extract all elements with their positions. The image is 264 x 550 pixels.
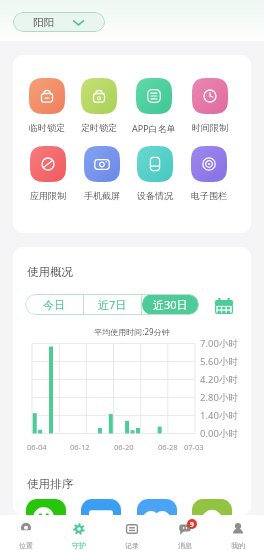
staticText: 9 (190, 520, 194, 529)
staticText: 2.80小时 (200, 391, 238, 404)
staticText: 平均使用时间:29分钟 (13, 326, 251, 337)
staticText: 定时锁定 (81, 122, 117, 133)
button[interactable]: 近30日 (142, 294, 199, 315)
button[interactable]: 电子围栏 (191, 146, 227, 201)
button[interactable]: 记录 (105, 516, 158, 550)
staticText: 守护 (72, 541, 86, 550)
button[interactable] (26, 499, 66, 515)
staticText: 消息 (178, 541, 192, 550)
staticText: 07-03 (184, 442, 204, 452)
staticText: 记录 (125, 541, 139, 550)
staticText: 5.60小时 (200, 355, 238, 368)
staticText: 时间限制 (192, 122, 228, 133)
button[interactable] (192, 499, 232, 515)
staticText: APP白名单 (132, 122, 176, 134)
button[interactable]: 阳阳 (13, 12, 105, 32)
button[interactable]: Select date (215, 298, 233, 314)
staticText: 06-04 (27, 442, 47, 452)
button[interactable]: 守护 (52, 516, 105, 550)
button[interactable]: 手机截屏 (84, 146, 120, 201)
staticText: 近30日 (153, 297, 188, 312)
button[interactable] (81, 499, 121, 515)
staticText: 06-12 (70, 442, 90, 452)
button[interactable]: 设备情况 (137, 146, 173, 201)
staticText: 应用限制 (30, 190, 66, 201)
button[interactable]: 9 (158, 516, 211, 550)
staticText: 电子围栏 (191, 190, 227, 201)
button[interactable]: 应用限制 (30, 146, 66, 201)
button[interactable]: 位置 (0, 516, 52, 550)
staticText: 使用排序 (27, 477, 73, 491)
button[interactable] (137, 499, 177, 515)
staticText: 今日 (43, 298, 65, 312)
staticText: 4.20小时 (200, 373, 238, 386)
staticText: 0.00小时 (200, 427, 238, 440)
staticText: 06-28 (158, 442, 178, 452)
staticText: 近7日 (98, 297, 127, 312)
staticText: 使用概况 (27, 265, 73, 279)
staticText: 1.40小时 (200, 409, 238, 422)
button[interactable]: 我的 (211, 516, 264, 550)
staticText: 06-20 (114, 442, 134, 452)
button[interactable]: 定时锁定 (81, 78, 117, 133)
button[interactable]: 时间限制 (192, 78, 228, 133)
button[interactable]: APP白名单 (132, 78, 176, 134)
button[interactable]: 今日 (25, 294, 83, 315)
button[interactable]: 近7日 (84, 294, 141, 315)
staticText: 临时锁定 (29, 122, 65, 133)
staticText: 位置 (19, 541, 33, 550)
staticText: 设备情况 (137, 190, 173, 201)
staticText: 阳阳 (33, 16, 54, 29)
staticText: 我的 (231, 541, 245, 550)
staticText: 7.00小时 (200, 337, 238, 350)
button[interactable]: 临时锁定 (29, 78, 65, 133)
staticText: 手机截屏 (84, 190, 120, 201)
